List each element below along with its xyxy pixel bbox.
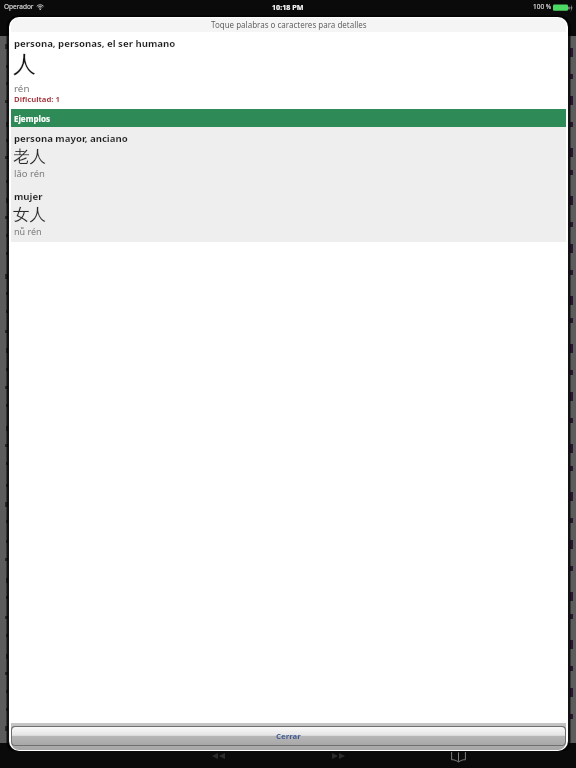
staticText: Cerrar bbox=[276, 731, 301, 742]
staticText: Operador bbox=[4, 2, 34, 11]
button[interactable]: Fast forward bbox=[326, 751, 350, 768]
staticText: nǚ rén bbox=[14, 225, 42, 237]
button[interactable]: Rewind bbox=[206, 751, 230, 768]
staticText: Dificultad: 1 bbox=[14, 94, 60, 104]
staticText: persona mayor, anciano bbox=[14, 132, 128, 145]
staticText: 人 bbox=[13, 50, 36, 79]
staticText: lǎo rén bbox=[14, 167, 45, 180]
staticText: rén bbox=[14, 82, 30, 95]
button[interactable]: Cerrar bbox=[12, 727, 565, 745]
staticText: Ejemplos bbox=[14, 113, 50, 124]
staticText: 100 % bbox=[533, 2, 552, 11]
staticText: 女人 bbox=[13, 204, 46, 225]
staticText: mujer bbox=[14, 190, 43, 203]
staticText: persona, personas, el ser humano bbox=[14, 37, 176, 50]
staticText: Toque palabras o caracteres para detalle… bbox=[211, 19, 367, 30]
staticText: 老人 bbox=[13, 146, 46, 167]
button[interactable]: Bookmarks bbox=[446, 751, 470, 768]
staticText: 10:18 PM bbox=[272, 2, 304, 12]
